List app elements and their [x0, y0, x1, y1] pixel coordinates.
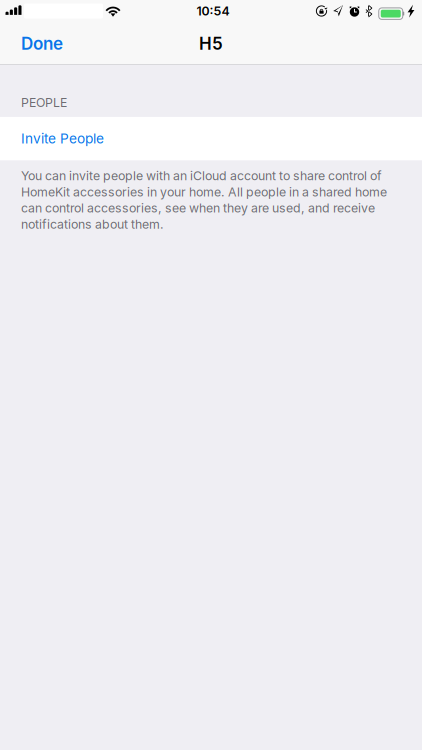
staticText: Done [21, 33, 63, 54]
staticText: Invite People [21, 130, 104, 147]
staticText: 10:54 [196, 3, 229, 18]
button[interactable]: Invite People [0, 117, 422, 160]
staticText: PEOPLE [21, 95, 67, 110]
staticText: You can invite people with an iCloud acc… [21, 168, 387, 232]
button[interactable]: Done [0, 22, 77, 65]
staticText: H5 [199, 33, 223, 54]
